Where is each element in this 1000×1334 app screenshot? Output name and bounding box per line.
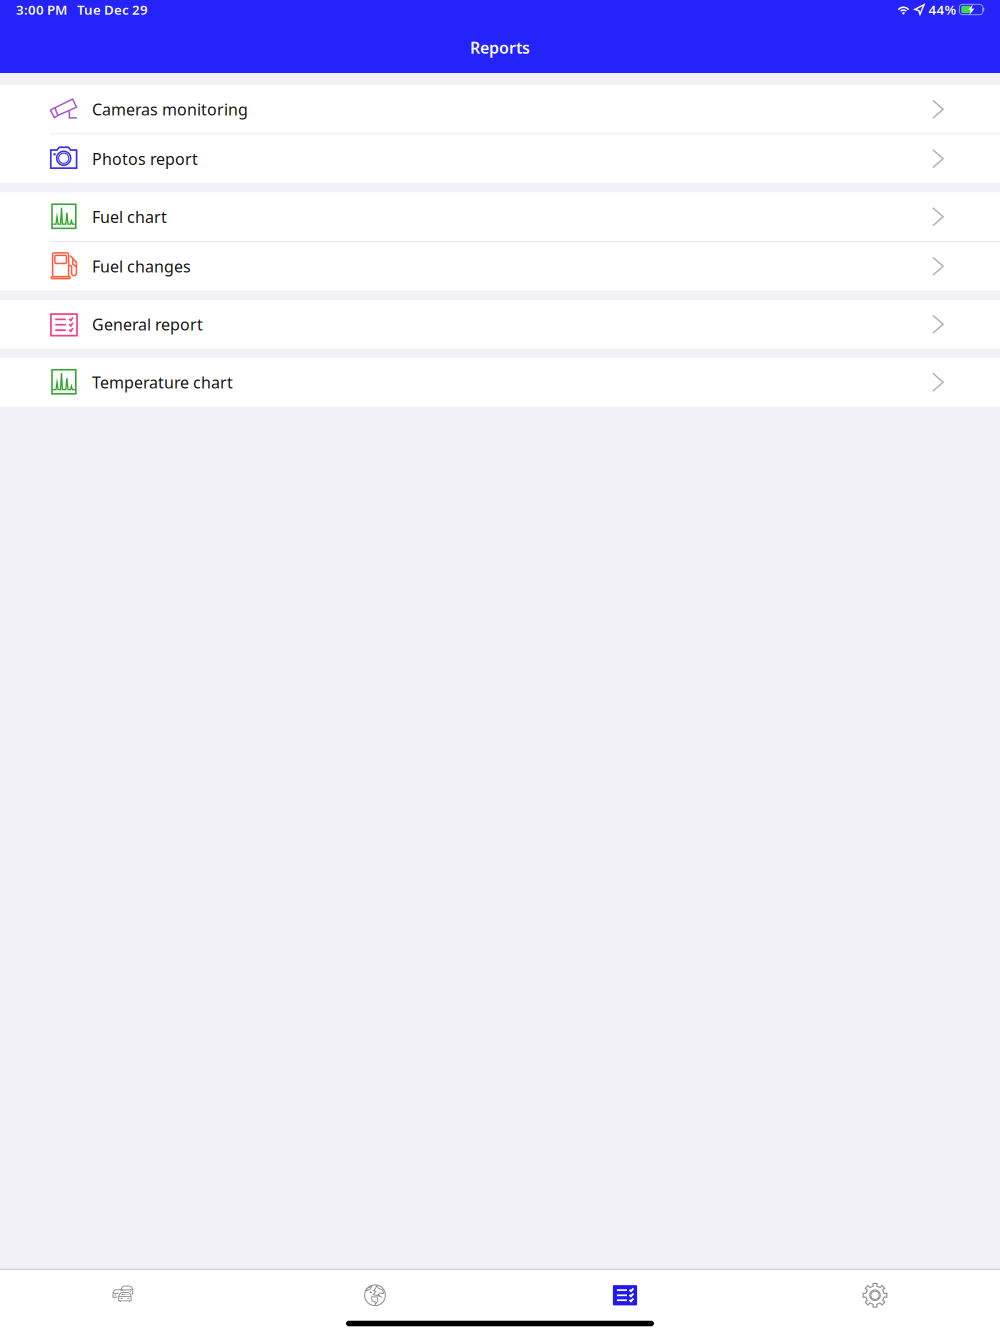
staticText: General report (92, 314, 203, 335)
button[interactable]: Vehicles (0, 1270, 250, 1321)
staticText: Tue Dec 29 (77, 1, 148, 18)
staticText: Fuel changes (92, 256, 191, 277)
button[interactable]: Map (250, 1270, 500, 1321)
staticText: 44% (928, 1, 956, 18)
staticText: 3:00 PM (16, 1, 67, 18)
button[interactable]: Reports (500, 1270, 750, 1321)
button[interactable]: Photos report (0, 134, 1000, 183)
button[interactable]: Cameras monitoring (0, 85, 1000, 133)
staticText: Cameras monitoring (92, 99, 248, 120)
staticText: Photos report (92, 148, 198, 169)
button[interactable]: General report (0, 300, 1000, 348)
button[interactable]: Fuel chart (0, 192, 1000, 241)
staticText: Reports (470, 37, 530, 58)
button[interactable]: Settings (750, 1270, 1000, 1321)
button[interactable]: Temperature chart (0, 358, 1000, 406)
button[interactable]: Fuel changes (0, 242, 1000, 290)
staticText: Fuel chart (92, 206, 167, 227)
staticText: Temperature chart (92, 372, 233, 393)
